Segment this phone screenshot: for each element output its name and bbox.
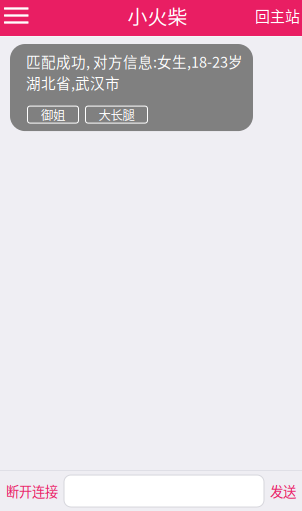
- staticText: 发送: [270, 481, 296, 501]
- staticText: 大长腿: [98, 106, 134, 124]
- button[interactable]: 御姐: [27, 106, 78, 123]
- button[interactable]: 大长腿: [85, 106, 147, 123]
- staticText: 湖北省,武汉市: [26, 72, 120, 93]
- button[interactable]: Message: [64, 475, 264, 507]
- staticText: 小火柴: [127, 1, 187, 30]
- staticText: 御姐: [41, 106, 65, 124]
- button[interactable]: 发送: [264, 471, 302, 511]
- staticText: 回主站: [255, 5, 300, 26]
- button[interactable]: 断开连接: [0, 471, 64, 511]
- button[interactable]: 回主站: [255, 0, 302, 31]
- staticText: 匹配成功, 对方信息:女生,18-23岁: [26, 51, 243, 72]
- button[interactable]: Menu: [0, 0, 44, 31]
- staticText: 断开连接: [6, 481, 58, 500]
